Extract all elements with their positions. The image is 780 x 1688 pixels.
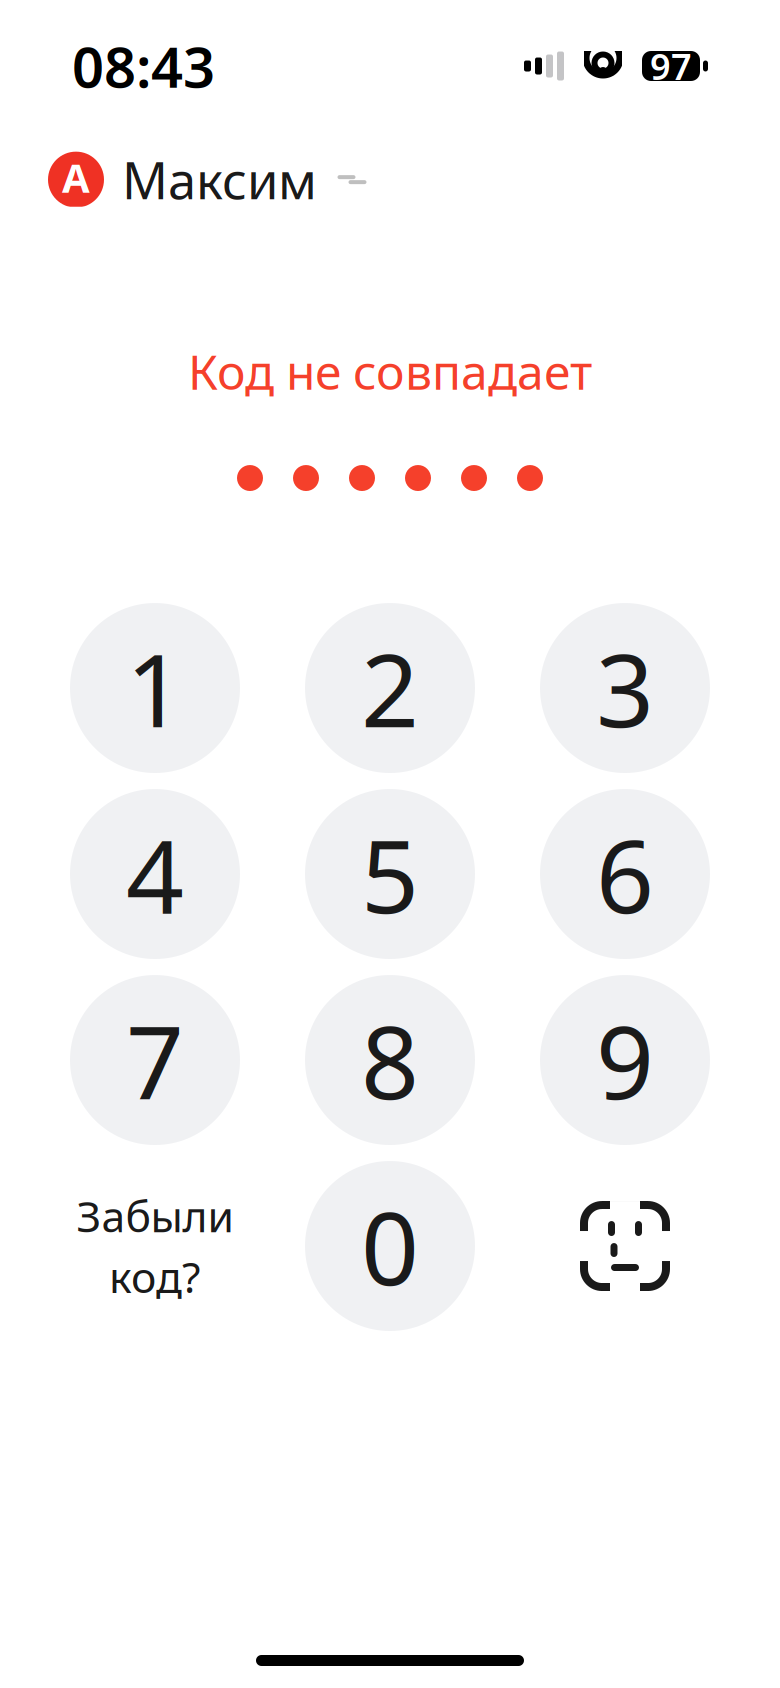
staticText: 08:43 (72, 29, 215, 103)
staticText: 1 (126, 621, 184, 755)
staticText: 7 (126, 993, 184, 1127)
staticText: 4 (126, 807, 184, 941)
button[interactable]: A (48, 138, 369, 221)
button[interactable]: 5 (305, 789, 475, 959)
button[interactable]: Забыли (70, 1161, 240, 1331)
staticText: Максим (122, 146, 317, 213)
button[interactable]: 8 (305, 975, 475, 1145)
staticText: 5 (361, 807, 419, 941)
staticText: 6 (596, 807, 654, 941)
button[interactable]: 4 (70, 789, 240, 959)
button[interactable]: 3 (540, 603, 710, 773)
staticText: код? (109, 1248, 201, 1305)
staticText: 9 (596, 993, 654, 1127)
button[interactable]: 7 (70, 975, 240, 1145)
staticText: 0 (361, 1179, 419, 1313)
button[interactable]: Войти по Face ID (540, 1161, 710, 1331)
staticText: Забыли (76, 1187, 233, 1244)
button[interactable]: 2 (305, 603, 475, 773)
staticText: 3 (596, 621, 654, 755)
staticText: Код не совпадает (188, 339, 592, 403)
button[interactable]: 6 (540, 789, 710, 959)
button[interactable]: 0 (305, 1161, 475, 1331)
button[interactable]: 9 (540, 975, 710, 1145)
staticText: 8 (361, 993, 419, 1127)
staticText: 97 (650, 42, 692, 90)
staticText: 2 (361, 621, 419, 755)
button[interactable]: 1 (70, 603, 240, 773)
staticText: A (62, 151, 90, 204)
